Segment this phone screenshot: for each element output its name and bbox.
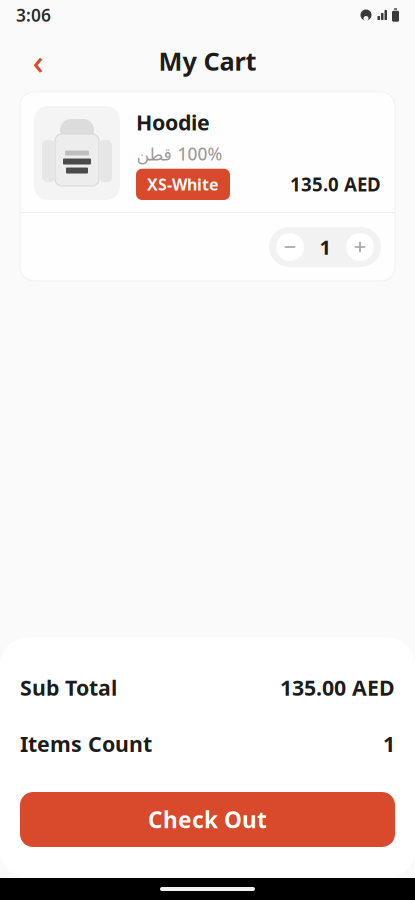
staticText: 135.0 AED [290,172,381,197]
staticText: 1 [383,730,395,758]
button[interactable]: Back [18,41,58,81]
staticText: Hoodie [136,108,210,136]
staticText: 135.00 AED [280,673,395,702]
staticText: 100% قطن [136,142,222,165]
staticText: 1 [319,234,330,260]
staticText: Sub Total [20,673,117,702]
button[interactable]: Decrease quantity [273,230,307,264]
staticText: ‹ [32,38,43,84]
staticText: Check Out [148,804,267,834]
staticText: My Cart [158,44,256,78]
staticText: Items Count [20,730,152,758]
staticText: XS-White [147,174,219,195]
staticText: 3:06 [16,3,51,26]
button[interactable]: Check Out [20,792,395,847]
button[interactable]: Increase quantity [343,230,377,264]
